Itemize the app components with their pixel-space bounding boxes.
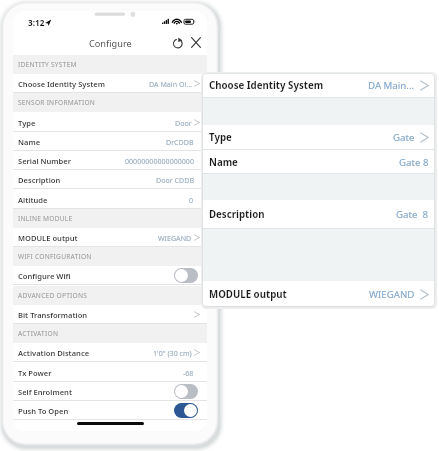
staticText: Configure Wifi xyxy=(18,271,71,281)
staticText: Description xyxy=(209,208,265,221)
staticText: MODULE output xyxy=(18,233,78,243)
staticText: WIFI CONFIGURATION xyxy=(18,252,92,261)
staticText: ACTIVATION xyxy=(18,329,59,338)
staticText: Self Enrolment xyxy=(18,387,72,397)
staticText: -68 xyxy=(183,368,194,378)
staticText: 00000000000000000 xyxy=(125,156,194,166)
button[interactable]: Description xyxy=(13,170,207,189)
staticText: Activation Distance xyxy=(18,348,90,358)
button[interactable]: Push To Open xyxy=(13,401,207,420)
staticText: Bit Transformation xyxy=(18,310,88,320)
button[interactable]: Close xyxy=(191,37,201,48)
button[interactable]: Choose Identity System xyxy=(202,73,435,98)
staticText: 1'0" (30 cm) xyxy=(153,348,192,358)
staticText: Description xyxy=(18,175,61,185)
button[interactable]: Name xyxy=(202,150,435,174)
staticText: DA Main Ol... xyxy=(149,79,192,89)
staticText: Tx Power xyxy=(18,368,52,378)
button[interactable]: MODULE output xyxy=(13,228,207,247)
button[interactable]: Altitude xyxy=(13,190,207,209)
staticText: Serial Number xyxy=(18,156,71,166)
staticText: DrCDDB xyxy=(166,137,194,147)
staticText: Type xyxy=(18,118,36,128)
button[interactable]: Name xyxy=(13,132,207,151)
staticText: Choose Identity System xyxy=(18,79,105,89)
staticText: DA Main... xyxy=(368,79,415,92)
staticText: SENSOR INFORMATION xyxy=(18,98,96,107)
button[interactable]: Bit Transformation xyxy=(13,305,207,324)
staticText: Choose Identity System xyxy=(209,79,324,92)
staticText: 0 xyxy=(189,195,194,205)
staticText: Door CDDB xyxy=(156,175,194,185)
staticText: 3:12 xyxy=(28,17,45,28)
button[interactable]: MODULE output xyxy=(202,281,435,307)
staticText: INLINE MODULE xyxy=(18,214,73,223)
button[interactable]: Refresh xyxy=(172,37,184,49)
staticText: WIEGAND xyxy=(369,288,415,301)
staticText: ADVANCED OPTIONS xyxy=(18,291,88,300)
staticText: Gate xyxy=(393,131,415,144)
button[interactable]: Self Enrolment xyxy=(13,382,207,401)
staticText: Push To Open xyxy=(18,406,69,416)
button[interactable]: Configure Wifi xyxy=(13,266,207,285)
staticText: Name xyxy=(209,156,238,169)
button[interactable]: Serial Number xyxy=(13,151,207,170)
button[interactable]: Type xyxy=(202,125,435,150)
staticText: Altitude xyxy=(18,195,48,205)
button[interactable]: Tx Power xyxy=(13,363,207,382)
button[interactable]: Activation Distance xyxy=(13,343,207,362)
button[interactable]: Type xyxy=(13,113,207,132)
staticText: MODULE output xyxy=(209,288,287,301)
staticText: IDENTITY SYSTEM xyxy=(18,60,77,69)
button[interactable]: Description xyxy=(202,200,435,229)
staticText: Gate 8 xyxy=(396,208,429,221)
staticText: Name xyxy=(18,137,41,147)
staticText: Type xyxy=(209,131,232,144)
staticText: Configure xyxy=(89,37,132,50)
staticText: WIEGAND xyxy=(158,233,192,243)
staticText: Door xyxy=(175,118,192,128)
button[interactable]: Choose Identity System xyxy=(13,74,207,93)
staticText: Gate 8 xyxy=(399,156,429,169)
